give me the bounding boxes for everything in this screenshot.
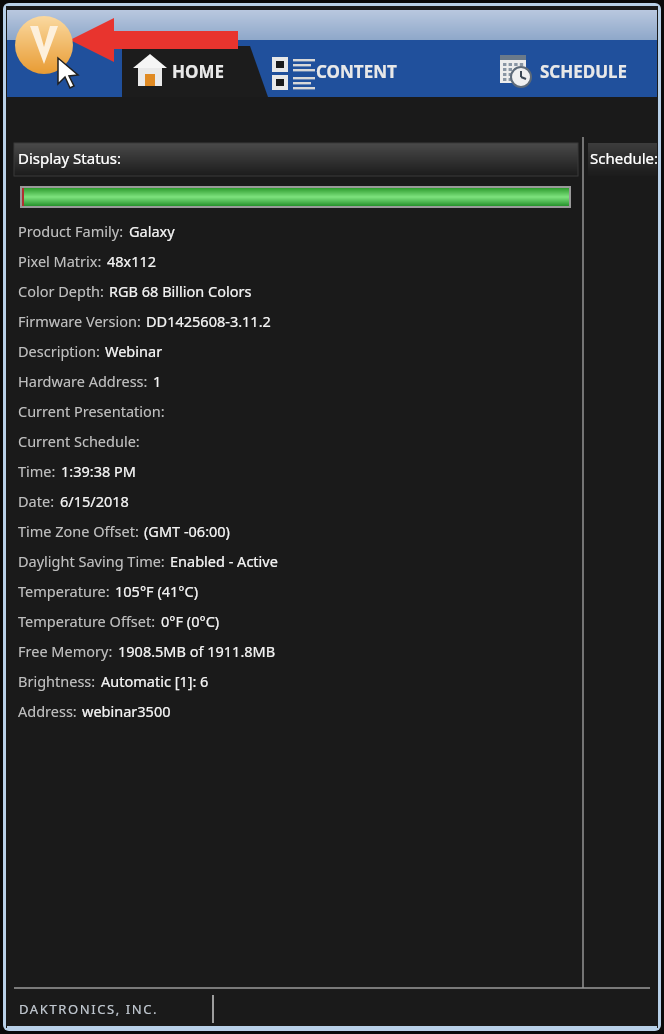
- staticText: Address:: [18, 701, 77, 721]
- staticText: HOME: [172, 60, 225, 83]
- button[interactable]: Venus Control Suite logo: [15, 16, 73, 74]
- staticText: (GMT -06:00): [144, 521, 230, 541]
- staticText: Time Zone Offset:: [18, 521, 139, 541]
- staticText: 1:39:38 PM: [61, 461, 136, 481]
- staticText: 105°F (41°C): [115, 581, 199, 601]
- staticText: Free Memory:: [18, 641, 113, 661]
- staticText: Time:: [18, 461, 56, 481]
- staticText: Current Presentation:: [18, 401, 165, 421]
- button[interactable]: HOME: [122, 46, 268, 97]
- staticText: 1: [153, 371, 162, 391]
- staticText: 48x112: [107, 251, 157, 271]
- button[interactable]: CONTENT: [268, 46, 448, 97]
- staticText: 6/15/2018: [60, 491, 129, 511]
- staticText: Schedule:: [590, 148, 659, 168]
- staticText: Product Family:: [18, 221, 124, 241]
- staticText: Brightness:: [18, 671, 96, 691]
- button[interactable]: SCHEDULE: [492, 46, 660, 97]
- staticText: Webinar: [105, 341, 163, 361]
- staticText: Date:: [18, 491, 55, 511]
- staticText: 1908.5MB of 1911.8MB: [118, 641, 276, 661]
- staticText: Hardware Address:: [18, 371, 148, 391]
- staticText: Daylight Saving Time:: [18, 551, 165, 571]
- staticText: 0°F (0°C): [161, 611, 220, 631]
- staticText: DD1425608-3.11.2: [146, 311, 271, 331]
- staticText: Pixel Matrix:: [18, 251, 102, 271]
- staticText: webinar3500: [82, 701, 171, 721]
- staticText: Color Depth:: [18, 281, 104, 301]
- staticText: Display Status:: [18, 148, 122, 168]
- staticText: DAKTRONICS, INC.: [19, 1000, 159, 1018]
- staticText: Current Schedule:: [18, 431, 140, 451]
- staticText: Galaxy: [129, 221, 175, 241]
- staticText: RGB 68 Billion Colors: [109, 281, 252, 301]
- staticText: Automatic [1]: 6: [101, 671, 209, 691]
- staticText: Firmware Version:: [18, 311, 141, 331]
- staticText: Temperature:: [18, 581, 110, 601]
- staticText: Description:: [18, 341, 100, 361]
- staticText: Enabled - Active: [170, 551, 278, 571]
- staticText: CONTENT: [316, 60, 397, 83]
- staticText: SCHEDULE: [540, 60, 628, 83]
- staticText: Temperature Offset:: [18, 611, 156, 631]
